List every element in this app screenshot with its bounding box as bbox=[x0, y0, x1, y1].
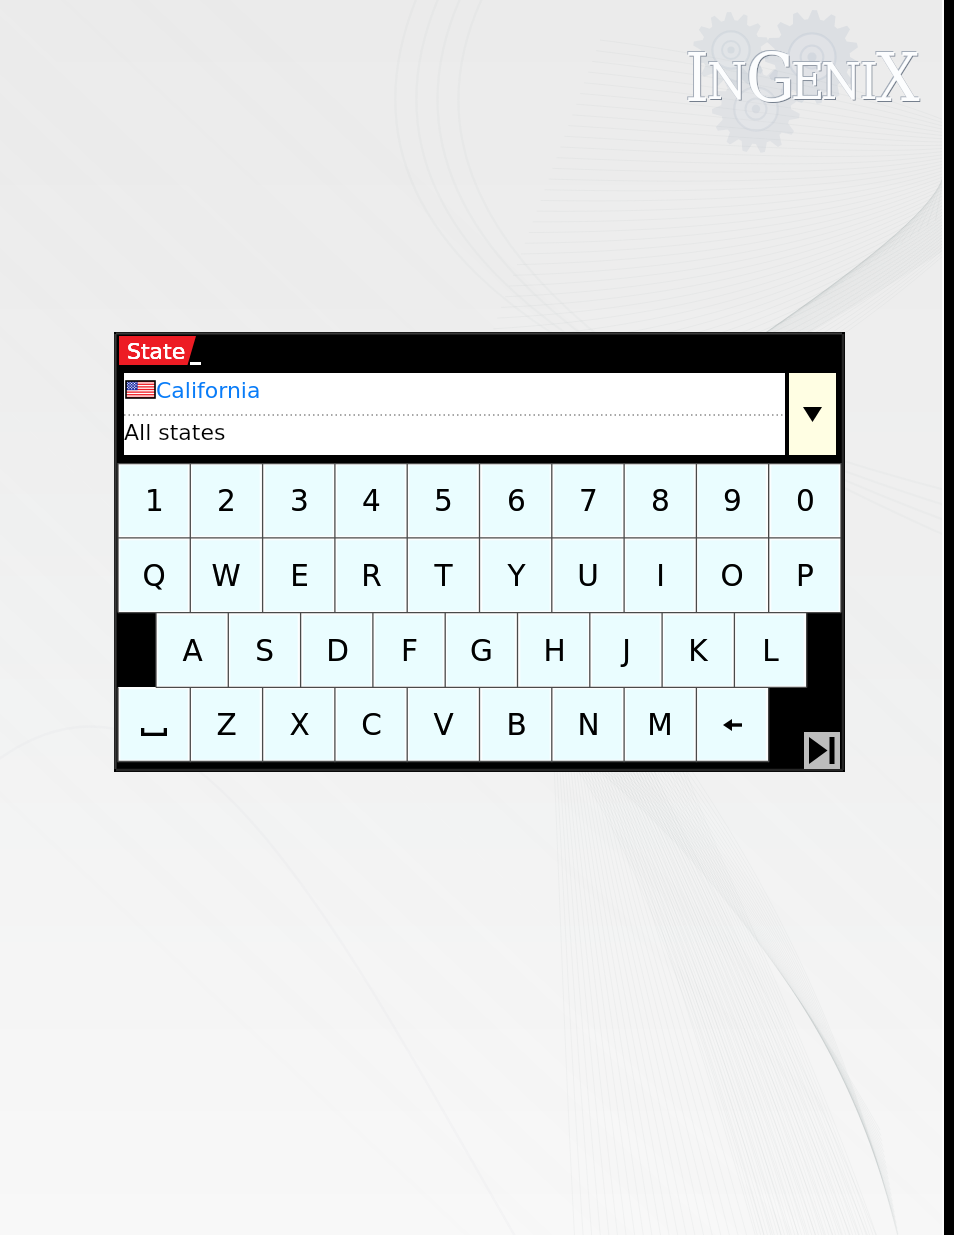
button[interactable]: O bbox=[696, 538, 768, 613]
staticText: 1 bbox=[145, 484, 164, 518]
button[interactable]: 2 bbox=[190, 463, 262, 538]
button[interactable]: H bbox=[518, 613, 590, 688]
staticText: 3 bbox=[290, 484, 309, 518]
button[interactable]: L bbox=[734, 613, 806, 688]
staticText: X bbox=[877, 39, 921, 118]
staticText: State bbox=[127, 339, 186, 365]
button[interactable]: 7 bbox=[552, 463, 624, 538]
other: Space bbox=[141, 728, 167, 736]
staticText: 5 bbox=[434, 484, 453, 518]
button[interactable]: X bbox=[263, 687, 335, 762]
staticText: Z bbox=[216, 708, 237, 742]
staticText: E bbox=[792, 53, 826, 112]
button[interactable]: K bbox=[662, 613, 734, 688]
button[interactable]: 6 bbox=[480, 463, 552, 538]
staticText: P bbox=[796, 559, 814, 593]
staticText: I bbox=[656, 559, 665, 593]
staticText: E bbox=[290, 559, 309, 593]
staticText: All states bbox=[124, 420, 226, 446]
button[interactable]: G bbox=[445, 613, 517, 688]
staticText: H bbox=[543, 634, 566, 668]
staticText: G bbox=[470, 634, 493, 668]
button[interactable]: Backspace bbox=[696, 687, 768, 762]
staticText: 2 bbox=[217, 484, 236, 518]
staticText: J bbox=[622, 634, 631, 668]
button[interactable]: State bbox=[119, 336, 196, 365]
staticText: 4 bbox=[362, 484, 381, 518]
button[interactable]: N bbox=[552, 687, 624, 762]
staticText: W bbox=[211, 559, 241, 593]
staticText: 8 bbox=[651, 484, 670, 518]
button[interactable]: R bbox=[335, 538, 407, 613]
staticText: 3 bbox=[290, 484, 309, 518]
staticText: 9 bbox=[723, 484, 742, 518]
button[interactable]: W bbox=[190, 538, 262, 613]
staticText: A bbox=[182, 634, 203, 668]
staticText: E bbox=[791, 52, 825, 111]
button[interactable]: U bbox=[552, 538, 624, 613]
staticText: Q bbox=[142, 559, 166, 593]
button[interactable]: 3 bbox=[263, 463, 335, 538]
button[interactable]: 8 bbox=[624, 463, 696, 538]
button[interactable]: E bbox=[263, 538, 335, 613]
staticText: 7 bbox=[579, 484, 598, 518]
button[interactable]: J bbox=[590, 613, 662, 688]
staticText: S bbox=[255, 634, 274, 668]
staticText: N bbox=[577, 708, 600, 742]
staticText: X bbox=[875, 37, 919, 116]
staticText: B bbox=[506, 708, 527, 742]
staticText: 5 bbox=[434, 484, 453, 518]
staticText: L bbox=[762, 634, 779, 668]
button[interactable]: T bbox=[407, 538, 479, 613]
staticText: G bbox=[470, 634, 493, 668]
button[interactable]: Q bbox=[118, 538, 190, 613]
staticText: 6 bbox=[507, 484, 526, 518]
button[interactable]: C bbox=[335, 687, 407, 762]
staticText: A bbox=[182, 634, 203, 668]
staticText: B bbox=[506, 708, 527, 742]
button[interactable]: 1 bbox=[118, 463, 190, 538]
staticText: P bbox=[796, 559, 814, 593]
staticText: N bbox=[577, 708, 600, 742]
button[interactable]: M bbox=[624, 687, 696, 762]
button[interactable]: Open state list bbox=[789, 373, 836, 455]
staticText: N bbox=[708, 53, 749, 112]
button[interactable]: California bbox=[124, 373, 785, 455]
staticText: K bbox=[688, 634, 708, 668]
button[interactable]: Z bbox=[190, 687, 262, 762]
staticText: H bbox=[543, 634, 566, 668]
staticText: R bbox=[361, 559, 382, 593]
staticText: K bbox=[688, 634, 708, 668]
button[interactable]: Space bbox=[118, 687, 190, 762]
button[interactable]: 9 bbox=[696, 463, 768, 538]
staticText: 7 bbox=[579, 484, 598, 518]
button[interactable]: 5 bbox=[407, 463, 479, 538]
button[interactable]: P bbox=[769, 538, 841, 613]
button[interactable]: B bbox=[480, 687, 552, 762]
staticText: G bbox=[746, 38, 795, 117]
button[interactable]: 4 bbox=[335, 463, 407, 538]
staticText: N bbox=[822, 53, 863, 112]
button[interactable]: 0 bbox=[769, 463, 841, 538]
button[interactable]: Y bbox=[480, 538, 552, 613]
staticText: California bbox=[156, 378, 261, 404]
button[interactable]: V bbox=[407, 687, 479, 762]
button[interactable]: I bbox=[624, 538, 696, 613]
staticText: O bbox=[720, 559, 744, 593]
staticText: Q bbox=[142, 559, 166, 593]
staticText: S bbox=[255, 634, 274, 668]
other: Backspace bbox=[723, 719, 742, 731]
staticText: R bbox=[361, 559, 382, 593]
staticText: 0 bbox=[796, 484, 815, 518]
button[interactable]: S bbox=[228, 613, 300, 688]
button[interactable]: Next bbox=[804, 732, 840, 769]
button[interactable]: A bbox=[156, 613, 228, 688]
button[interactable]: D bbox=[301, 613, 373, 688]
staticText: C bbox=[361, 708, 382, 742]
staticText: X bbox=[289, 708, 310, 742]
staticText: O bbox=[720, 559, 744, 593]
staticText: J bbox=[622, 634, 631, 668]
staticText: N bbox=[820, 51, 861, 110]
button[interactable]: F bbox=[373, 613, 445, 688]
staticText: 8 bbox=[651, 484, 670, 518]
